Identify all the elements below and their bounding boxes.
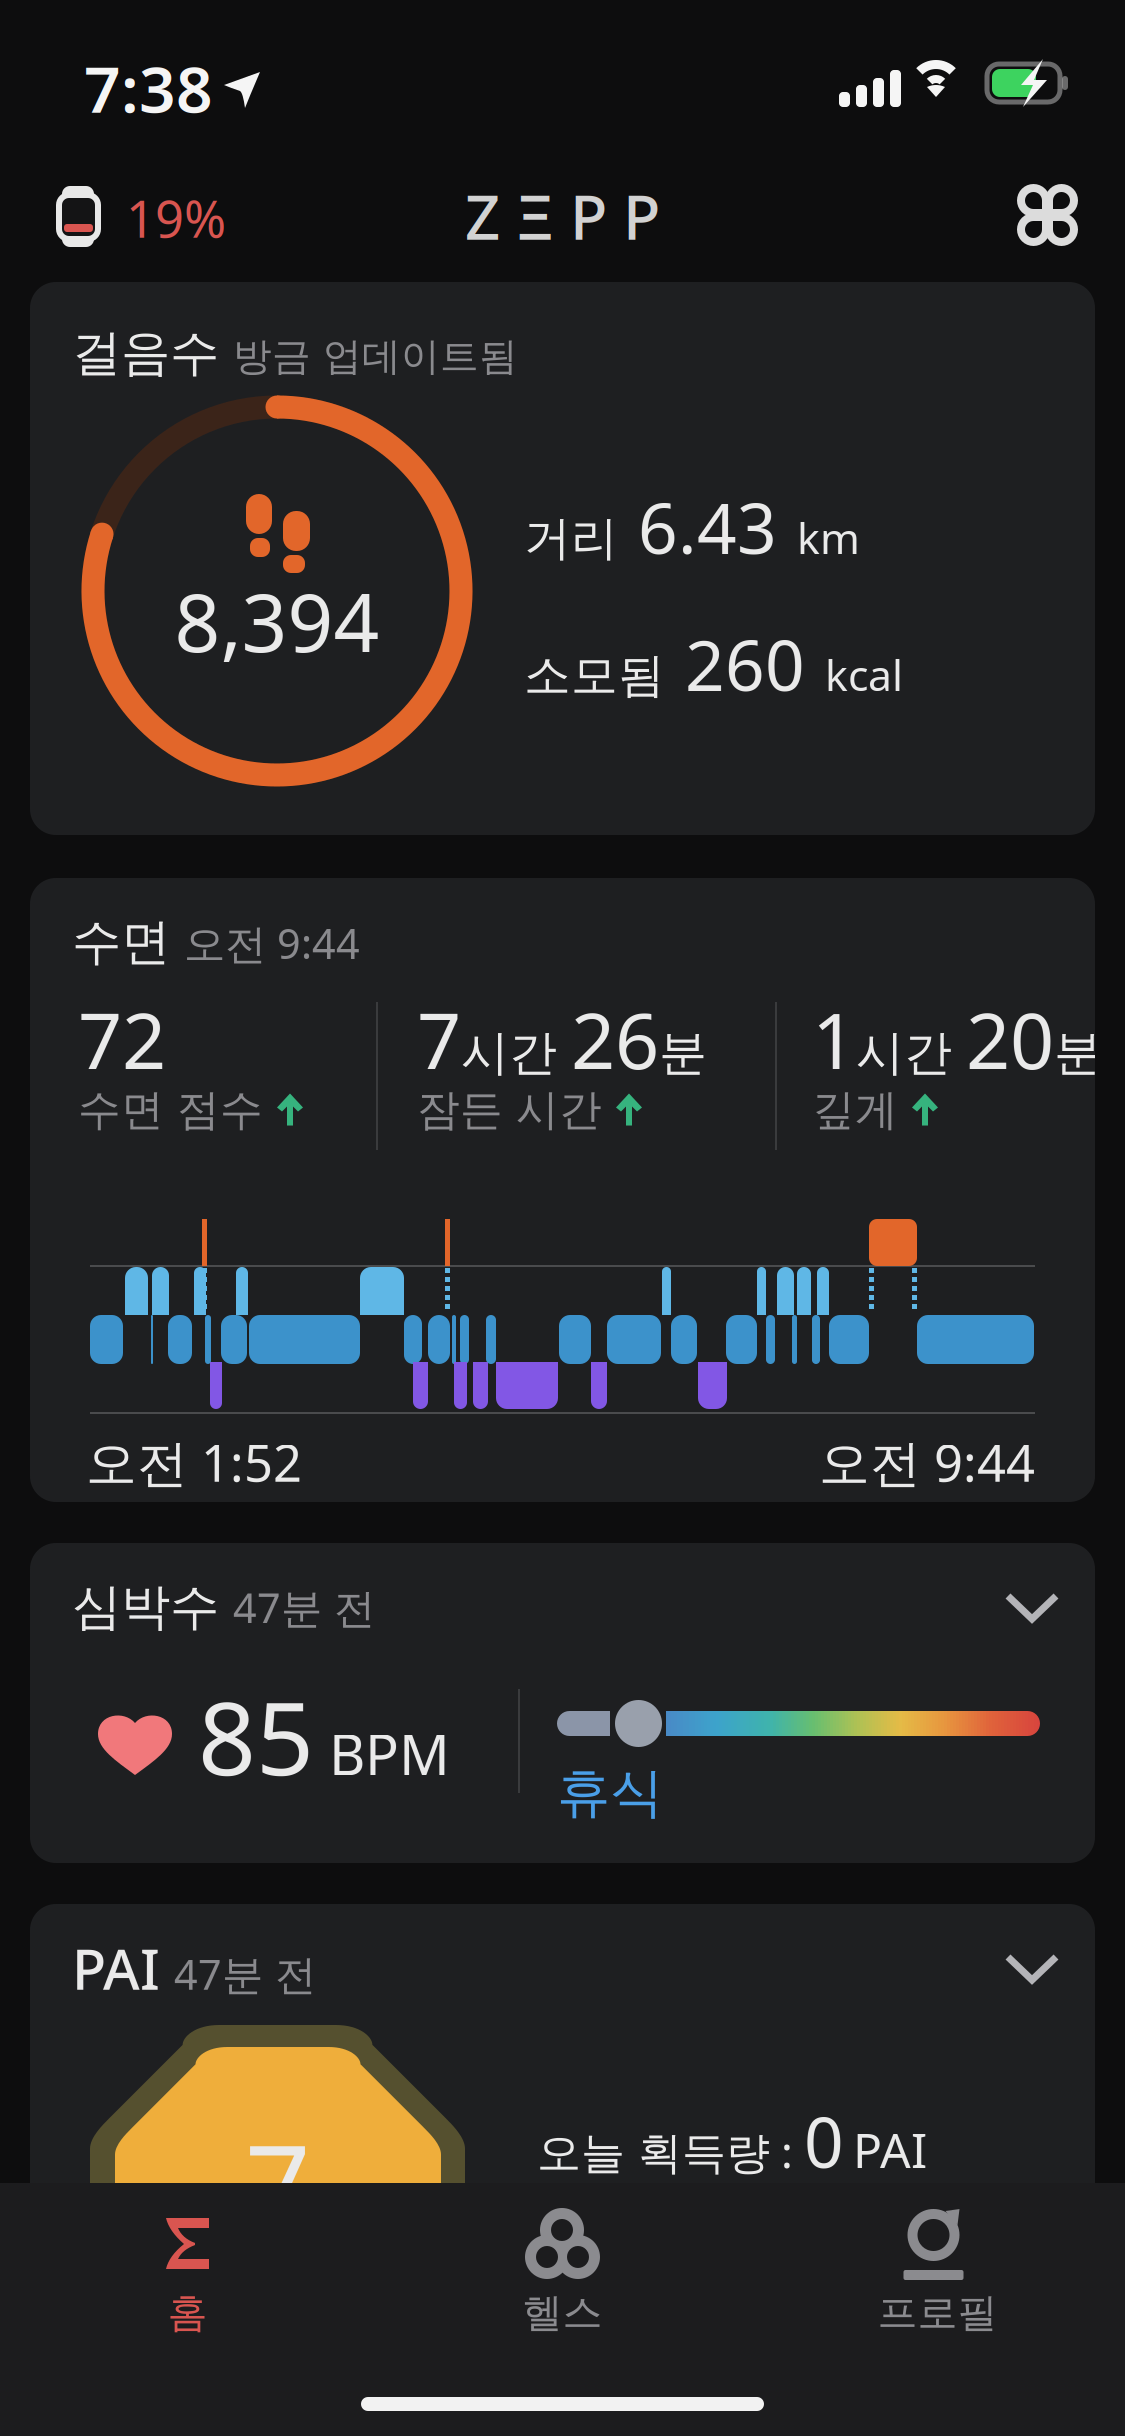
button[interactable]: 걸음수 [30,282,1095,835]
staticText: 잠든 시간 [417,1084,602,1136]
staticText: 수면 [72,912,170,972]
staticText: 85 [198,1669,314,1803]
staticText: 47분 전 [174,1946,316,2001]
button[interactable]: Expand PAI [992,1934,1072,2004]
button[interactable]: 프로필 [750,2183,1125,2363]
staticText: 19% [126,184,226,252]
button[interactable]: PAI [30,1904,1095,2344]
staticText: 헬스 [522,2288,602,2337]
staticText: 7 [417,988,461,1090]
staticText: 시간 [856,1023,966,1082]
button[interactable]: 홈 [0,2183,375,2363]
staticText: Z Ξ P P [465,175,660,257]
button[interactable]: Apps [1003,172,1093,258]
staticText: 1 [812,988,856,1090]
staticText: 소모됨 [524,647,665,704]
staticText: PAI [72,1931,160,2005]
button[interactable]: 19% [46,172,261,262]
staticText: 7 [245,2108,311,2260]
staticText: 분 [1054,1023,1102,1082]
staticText: 심박수 [72,1577,219,1637]
staticText: 걸음수 [72,323,219,383]
staticText: km [797,509,860,566]
staticText: 시간 [461,1023,571,1082]
staticText: 홈 [167,2288,207,2337]
staticText: 오전 9:44 [819,1428,1035,1496]
staticText: 20 [966,988,1054,1090]
button[interactable]: 심박수 [30,1543,1095,1863]
staticText: 수면 점수 [78,1084,263,1136]
staticText: 방금 업데이트됨 [233,333,518,380]
button[interactable]: 헬스 [375,2183,750,2363]
staticText: 오전 9:44 [184,915,360,970]
button[interactable]: 수면 [30,878,1095,1502]
staticText: 26 [571,988,659,1090]
staticText: 휴식 [557,1760,663,1826]
staticText: 오늘 획득량 : [537,2122,804,2181]
staticText: BPM [329,1716,450,1791]
staticText: 깊게 [812,1084,898,1136]
staticText: 47분 전 [233,1580,375,1635]
staticText: 72 [78,988,166,1090]
staticText: PAI [853,2117,927,2181]
staticText: 오전 1:52 [86,1428,302,1496]
staticText: 0 [804,2095,844,2187]
staticText: 분 [659,1023,707,1082]
staticText: 260 [685,618,805,710]
staticText: 6.43 [638,481,777,573]
staticText: 거리 [524,510,618,567]
staticText: kcal [825,646,903,703]
staticText: 프로필 [877,2288,997,2337]
button[interactable]: Expand heart rate [992,1573,1072,1643]
staticText: 8,394 [174,568,379,674]
staticText: 7:38 [84,45,213,130]
